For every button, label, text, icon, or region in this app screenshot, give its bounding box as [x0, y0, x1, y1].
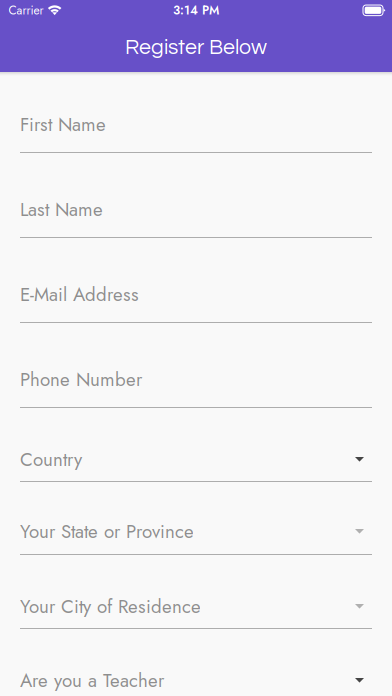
- button[interactable]: E-Mail Address: [0, 281, 392, 323]
- button[interactable]: Last Name: [0, 196, 392, 238]
- staticText: Country: [20, 446, 82, 473]
- staticText: First Name: [20, 111, 106, 138]
- staticText: Register Below: [125, 36, 267, 58]
- staticText: Your State or Province: [20, 518, 194, 545]
- button[interactable]: Your State or Province: [0, 518, 392, 555]
- staticText: Phone Number: [20, 366, 142, 393]
- button[interactable]: Phone Number: [0, 366, 392, 408]
- button[interactable]: First Name: [0, 111, 392, 153]
- staticText: E-Mail Address: [20, 281, 139, 308]
- button[interactable]: Are you a Teacher: [0, 667, 392, 696]
- staticText: 3:14 PM: [173, 2, 219, 19]
- staticText: Carrier: [8, 2, 43, 19]
- staticText: Are you a Teacher: [20, 667, 164, 694]
- staticText: Your City of Residence: [20, 593, 201, 620]
- staticText: Last Name: [20, 196, 103, 223]
- button[interactable]: Your City of Residence: [0, 593, 392, 629]
- button[interactable]: Country: [0, 446, 392, 482]
